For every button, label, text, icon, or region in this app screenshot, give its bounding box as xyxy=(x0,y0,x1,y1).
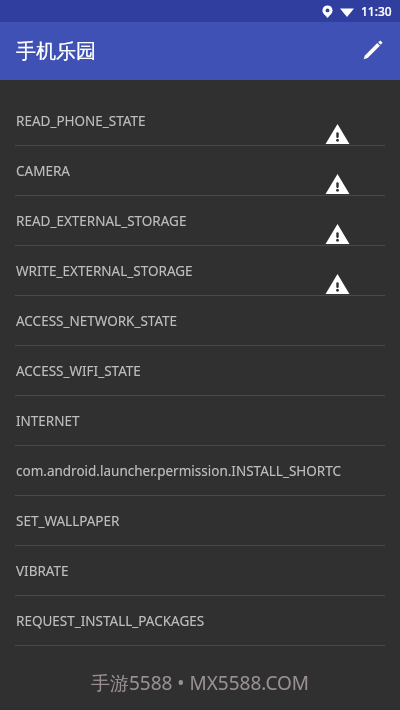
staticText: WRITE_EXTERNAL_STORAGE xyxy=(16,262,193,280)
button[interactable]: REQUEST_INSTALL_PACKAGES xyxy=(0,596,400,646)
staticText: 手机乐园 xyxy=(16,39,96,64)
staticText: SET_WALLPAPER xyxy=(16,512,120,530)
button[interactable]: ACCESS_NETWORK_STATE xyxy=(0,296,400,346)
staticText: com.android.launcher.permission.INSTALL_… xyxy=(16,462,350,480)
button[interactable]: ACCESS_WIFI_STATE xyxy=(0,346,400,396)
button[interactable]: INTERNET xyxy=(0,396,400,446)
staticText: 11:30 xyxy=(361,3,392,19)
button[interactable]: com.android.launcher.permission.INSTALL_… xyxy=(0,446,400,496)
staticText: 手游5588 • MX5588.COM xyxy=(0,670,400,696)
staticText: ACCESS_NETWORK_STATE xyxy=(16,312,178,330)
button[interactable]: CAMERA xyxy=(0,146,400,196)
button[interactable]: READ_EXTERNAL_STORAGE xyxy=(0,196,400,246)
button[interactable]: READ_PHONE_STATE xyxy=(0,96,400,146)
button[interactable]: SET_WALLPAPER xyxy=(0,496,400,546)
button[interactable]: VIBRATE xyxy=(0,546,400,596)
button[interactable]: WRITE_EXTERNAL_STORAGE xyxy=(0,246,400,296)
staticText: READ_PHONE_STATE xyxy=(16,112,146,130)
staticText: VIBRATE xyxy=(16,562,69,580)
staticText: REQUEST_INSTALL_PACKAGES xyxy=(16,612,205,630)
staticText: CAMERA xyxy=(16,162,70,180)
button[interactable]: Edit xyxy=(344,23,400,79)
staticText: INTERNET xyxy=(16,412,80,430)
staticText: READ_EXTERNAL_STORAGE xyxy=(16,212,187,230)
staticText: ACCESS_WIFI_STATE xyxy=(16,362,141,380)
